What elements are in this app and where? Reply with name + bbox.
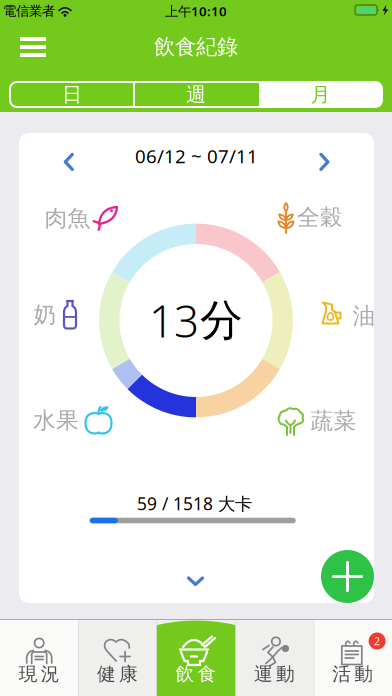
button[interactable]: 日 xyxy=(12,82,132,107)
staticText: 電信業者 xyxy=(3,3,55,19)
staticText: 59 / 1518 大卡 xyxy=(137,492,252,515)
button[interactable]: Expand details xyxy=(181,569,209,593)
staticText: 運動 xyxy=(254,662,295,685)
button[interactable]: 飲食 xyxy=(157,619,235,696)
button[interactable]: Add food record xyxy=(321,550,374,603)
staticText: 健康 xyxy=(97,662,138,685)
staticText: 水果 xyxy=(33,407,79,434)
button[interactable]: 月 xyxy=(259,82,382,107)
staticText: 奶 xyxy=(33,301,56,329)
button[interactable]: 現況 xyxy=(0,619,78,696)
button[interactable]: Next month xyxy=(309,148,339,176)
button[interactable]: Previous month xyxy=(54,148,84,176)
staticText: 上午10:10 xyxy=(165,2,227,20)
staticText: 蔬菜 xyxy=(310,407,356,435)
staticText: 日 xyxy=(62,82,82,107)
staticText: 油 xyxy=(352,302,375,330)
staticText: 月 xyxy=(310,82,330,107)
button[interactable]: Menu xyxy=(8,30,58,64)
staticText: 2 xyxy=(374,634,380,648)
staticText: 06/12 ~ 07/11 xyxy=(135,144,258,168)
staticText: 肉魚 xyxy=(44,205,90,232)
button[interactable]: 健康 xyxy=(78,619,157,696)
staticText: 週 xyxy=(186,82,206,107)
staticText: 飲食紀錄 xyxy=(154,34,238,60)
staticText: 13 xyxy=(149,291,199,350)
button[interactable]: 運動 xyxy=(235,619,314,696)
button[interactable]: 活動 xyxy=(314,619,392,696)
staticText: 活動 xyxy=(332,662,373,685)
button[interactable]: 週 xyxy=(136,82,256,107)
staticText: 全穀 xyxy=(297,204,343,231)
staticText: 飲食 xyxy=(175,662,216,685)
staticText: 現況 xyxy=(19,662,60,685)
staticText: 分 xyxy=(200,294,243,347)
